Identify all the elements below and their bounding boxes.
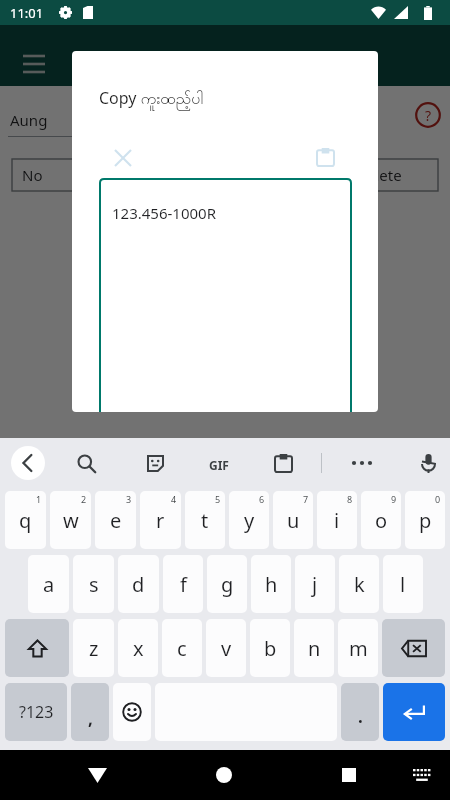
staticText: e [110,507,122,534]
staticText: t [201,507,209,534]
button[interactable]: Clear [105,140,141,176]
button[interactable]: No [12,159,82,191]
staticText: 4 [171,493,177,505]
button[interactable]: a [28,555,69,613]
button[interactable]: Paste [348,98,388,138]
button[interactable]: d [118,555,159,613]
staticText: m [349,635,368,662]
staticText: x [133,635,144,662]
button[interactable]: n [294,619,334,677]
staticText: h [265,571,278,598]
button[interactable]: . [341,683,379,741]
staticText: u [287,507,300,534]
button[interactable]: Emoji [113,683,151,741]
button[interactable]: Back [11,446,45,480]
button[interactable]: w [50,491,91,549]
staticText: w [63,507,79,534]
button[interactable]: v [206,619,246,677]
button[interactable]: Stickers [137,445,173,481]
button[interactable]: Clipboard [265,445,301,481]
button[interactable]: x [118,619,158,677]
staticText: a [43,571,55,598]
button[interactable]: i [317,491,357,549]
staticText: c [177,635,187,662]
button[interactable]: c [162,619,202,677]
button[interactable]: t [185,491,225,549]
button[interactable]: Help [408,95,448,135]
staticText: Copy ကူးထည့်ပါ [99,87,204,112]
staticText: Delete [356,165,402,185]
staticText: No [22,165,43,185]
staticText: k [354,571,365,598]
button[interactable]: , [71,683,109,741]
staticText: 8 [347,493,353,505]
button[interactable]: GIF [199,445,239,485]
staticText: z [89,635,99,662]
staticText: 6 [259,493,265,505]
staticText: 9 [391,493,397,505]
button[interactable]: Backspace [382,619,445,677]
button[interactable]: Enter [383,683,445,741]
button[interactable]: y [229,491,269,549]
button[interactable]: Paste from clipboard [307,139,343,175]
staticText: 0 [435,493,441,505]
button[interactable]: Menu [14,44,54,84]
button[interactable]: q [5,491,46,549]
staticText: n [308,635,321,662]
staticText: ?123 [19,701,54,723]
button[interactable]: ?123 [5,683,67,741]
button[interactable]: Home [202,753,246,797]
staticText: 1 [36,493,42,505]
staticText: 123.456-1000R [112,203,216,223]
button[interactable]: l [383,555,423,613]
button[interactable]: Switch keyboard [402,755,442,795]
staticText: ? [425,106,432,125]
button[interactable]: k [339,555,379,613]
staticText: p [419,507,432,534]
staticText: GIF [209,457,229,473]
button[interactable]: r [140,491,181,549]
button[interactable]: More options [344,445,380,481]
button[interactable]: Voice input [410,445,446,481]
staticText: r [156,507,165,534]
staticText: o [375,507,388,534]
staticText: , [88,707,93,730]
button[interactable]: o [361,491,401,549]
button[interactable]: j [295,555,335,613]
button[interactable]: b [250,619,290,677]
staticText: Aung [10,110,48,130]
button[interactable]: u [273,491,313,549]
staticText: 7 [303,493,309,505]
staticText: 3 [126,493,132,505]
button[interactable]: m [338,619,378,677]
button[interactable]: z [73,619,114,677]
staticText: 2 [81,493,87,505]
button[interactable]: h [251,555,291,613]
staticText: 5 [215,493,221,505]
staticText: i [334,507,340,534]
staticText: f [180,571,187,598]
staticText: d [132,571,145,598]
staticText: 11:01 [10,4,44,22]
staticText: y [244,507,255,534]
staticText: v [221,635,232,662]
button[interactable]: p [405,491,445,549]
button[interactable]: Delete [320,159,438,191]
button[interactable]: f [163,555,203,613]
button[interactable]: e [95,491,136,549]
button[interactable]: Shift [5,619,69,677]
staticText: j [312,571,318,598]
staticText: b [264,635,277,662]
staticText: q [19,507,32,534]
staticText: g [221,571,234,598]
button[interactable]: Search [68,445,104,481]
staticText: s [89,571,99,598]
button[interactable]: Recents [327,753,371,797]
staticText: l [400,571,406,598]
button[interactable]: s [73,555,114,613]
button[interactable]: g [207,555,247,613]
button[interactable]: Back [75,753,119,797]
staticText: . [358,705,363,728]
